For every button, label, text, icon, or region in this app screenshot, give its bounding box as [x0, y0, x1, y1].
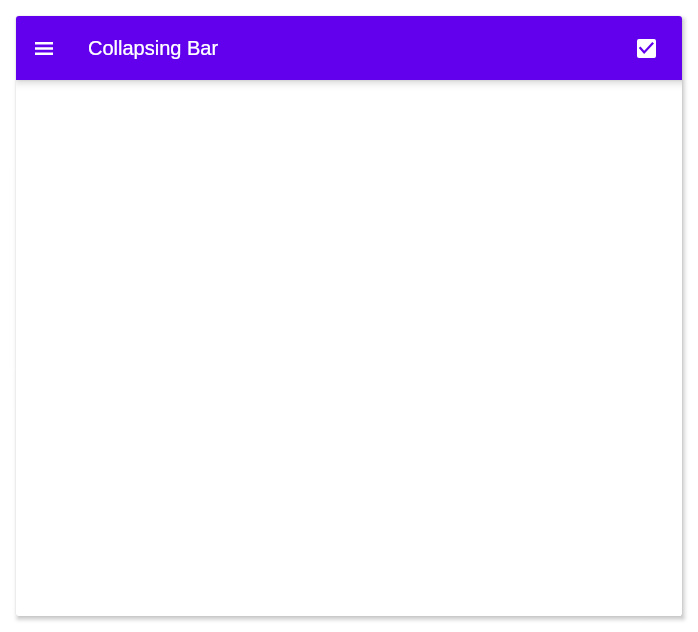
button[interactable]: Toggle checkbox — [626, 28, 666, 68]
staticText: Collapsing Bar — [88, 37, 219, 59]
button[interactable]: Menu — [24, 28, 64, 68]
